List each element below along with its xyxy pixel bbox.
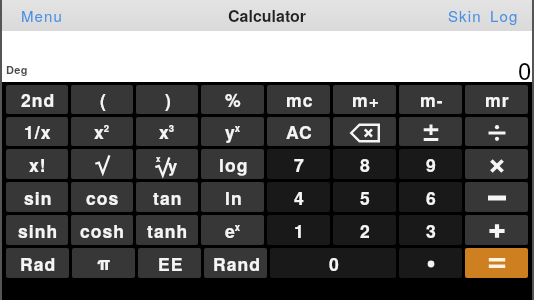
button[interactable]: (	[71, 85, 133, 114]
button[interactable]: mc	[267, 85, 330, 114]
button[interactable]: yx	[201, 117, 264, 146]
staticText: 1	[294, 218, 305, 243]
button[interactable]: 1	[267, 215, 330, 245]
staticText: 0	[518, 52, 532, 86]
button[interactable]: 7	[267, 149, 330, 179]
button[interactable]: EE	[138, 248, 201, 278]
staticText: m+	[352, 87, 380, 112]
staticText: x3	[159, 119, 175, 144]
button[interactable]: 0	[270, 248, 396, 278]
button[interactable]: Menu	[0, 0, 77, 31]
button[interactable]: m-	[399, 85, 462, 114]
staticText: Rand	[213, 251, 261, 276]
button[interactable]: 2	[333, 215, 396, 245]
staticText: Log	[490, 5, 519, 26]
button[interactable]: log	[201, 149, 264, 179]
staticText: log	[219, 152, 249, 177]
staticText: 8	[360, 152, 371, 177]
button[interactable]: tan	[136, 182, 198, 212]
staticText: AC	[286, 119, 313, 144]
button[interactable]: mr	[465, 85, 528, 114]
staticText: 3	[426, 218, 437, 243]
staticText: 2	[360, 218, 371, 243]
staticText: 5	[360, 185, 371, 210]
staticText: 0	[329, 251, 340, 276]
staticText: mc	[286, 87, 314, 112]
staticText: y	[168, 153, 178, 177]
staticText: 4	[294, 185, 305, 210]
staticText: %	[225, 87, 242, 112]
button[interactable]: x2	[71, 117, 133, 146]
button[interactable]: %	[201, 85, 264, 114]
staticText: 1/x	[24, 119, 52, 144]
button[interactable]: Rand	[204, 248, 267, 278]
button[interactable]: x!	[6, 149, 68, 179]
button[interactable]: Multiply	[465, 149, 528, 179]
staticText: Deg	[6, 62, 28, 78]
button[interactable]: 8	[333, 149, 396, 179]
staticText: x	[156, 153, 161, 164]
button[interactable]: Divide	[465, 117, 528, 146]
staticText: m-	[420, 87, 444, 112]
staticText: (	[100, 87, 107, 112]
button[interactable]: tanh	[136, 215, 198, 245]
staticText: sinh	[18, 218, 59, 243]
button[interactable]: 2nd	[6, 85, 68, 114]
button[interactable]: Equals	[465, 248, 528, 278]
staticText: tan	[153, 185, 183, 210]
staticText: yx	[225, 119, 241, 144]
staticText: ex	[225, 218, 241, 243]
staticText: )	[165, 87, 172, 112]
button[interactable]: m+	[333, 85, 396, 114]
staticText: Skin	[448, 5, 482, 26]
button[interactable]: cosh	[71, 215, 133, 245]
staticText: mr	[485, 87, 510, 112]
staticText: sin	[24, 185, 53, 210]
button[interactable]: sinh	[6, 215, 68, 245]
button[interactable]: 4	[267, 182, 330, 212]
button[interactable]: Plus	[465, 215, 528, 245]
button[interactable]: 3	[399, 215, 462, 245]
staticText: π	[97, 250, 111, 276]
staticText: 7	[294, 152, 305, 177]
button[interactable]: Rad	[6, 248, 69, 278]
button[interactable]: 5	[333, 182, 396, 212]
button[interactable]: Plus minus	[399, 117, 462, 146]
staticText: 9	[426, 152, 437, 177]
staticText: 2nd	[21, 87, 56, 112]
button[interactable]: ln	[201, 182, 264, 212]
staticText: Calculator	[228, 4, 307, 27]
button[interactable]: )	[136, 85, 198, 114]
button[interactable]: 1/x	[6, 117, 68, 146]
staticText: ln	[225, 185, 243, 210]
button[interactable]: sin	[6, 182, 68, 212]
button[interactable]: Backspace	[333, 117, 396, 146]
staticText: tanh	[147, 218, 189, 243]
button[interactable]: cos	[71, 182, 133, 212]
staticText: Rad	[20, 251, 57, 276]
button[interactable]: 9	[399, 149, 462, 179]
button[interactable]: Log	[486, 0, 523, 31]
button[interactable]: Pi	[72, 248, 135, 278]
button[interactable]: Nth root	[136, 149, 198, 179]
button[interactable]: Minus	[465, 182, 528, 212]
button[interactable]: 6	[399, 182, 462, 212]
staticText: cos	[86, 185, 120, 210]
button[interactable]: Square root	[71, 149, 133, 179]
button[interactable]: Decimal point	[399, 248, 462, 278]
button[interactable]: ex	[201, 215, 264, 245]
staticText: x!	[29, 152, 47, 177]
staticText: EE	[158, 251, 184, 276]
staticText: x2	[94, 119, 110, 144]
button[interactable]: Skin	[444, 0, 486, 31]
button[interactable]: AC	[267, 117, 330, 146]
staticText: Menu	[21, 5, 63, 26]
staticText: cosh	[80, 218, 126, 243]
button[interactable]: x3	[136, 117, 198, 146]
staticText: 6	[426, 185, 437, 210]
